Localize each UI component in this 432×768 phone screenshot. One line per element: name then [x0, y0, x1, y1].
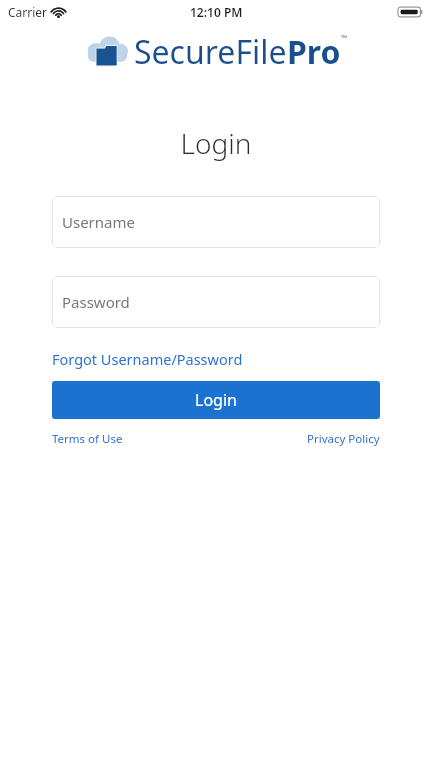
staticText: Privacy Policy: [307, 431, 380, 447]
button[interactable]: Username: [52, 196, 380, 248]
staticText: Login: [195, 389, 237, 411]
staticText: Carrier: [8, 4, 48, 20]
staticText: Password: [62, 292, 130, 312]
staticText: ™: [341, 32, 348, 43]
button[interactable]: Forgot Username/Password: [52, 349, 243, 369]
button[interactable]: Password: [52, 276, 380, 328]
staticText: Forgot Username/Password: [52, 349, 243, 369]
button[interactable]: Terms of Use: [52, 431, 123, 447]
button[interactable]: Login: [52, 381, 380, 419]
staticText: SecureFile: [134, 30, 287, 72]
staticText: 12:10 PM: [190, 4, 243, 20]
staticText: Pro: [287, 30, 341, 72]
staticText: Terms of Use: [52, 431, 123, 447]
staticText: Username: [62, 212, 135, 232]
staticText: Login: [0, 124, 432, 162]
button[interactable]: Privacy Policy: [307, 431, 380, 447]
